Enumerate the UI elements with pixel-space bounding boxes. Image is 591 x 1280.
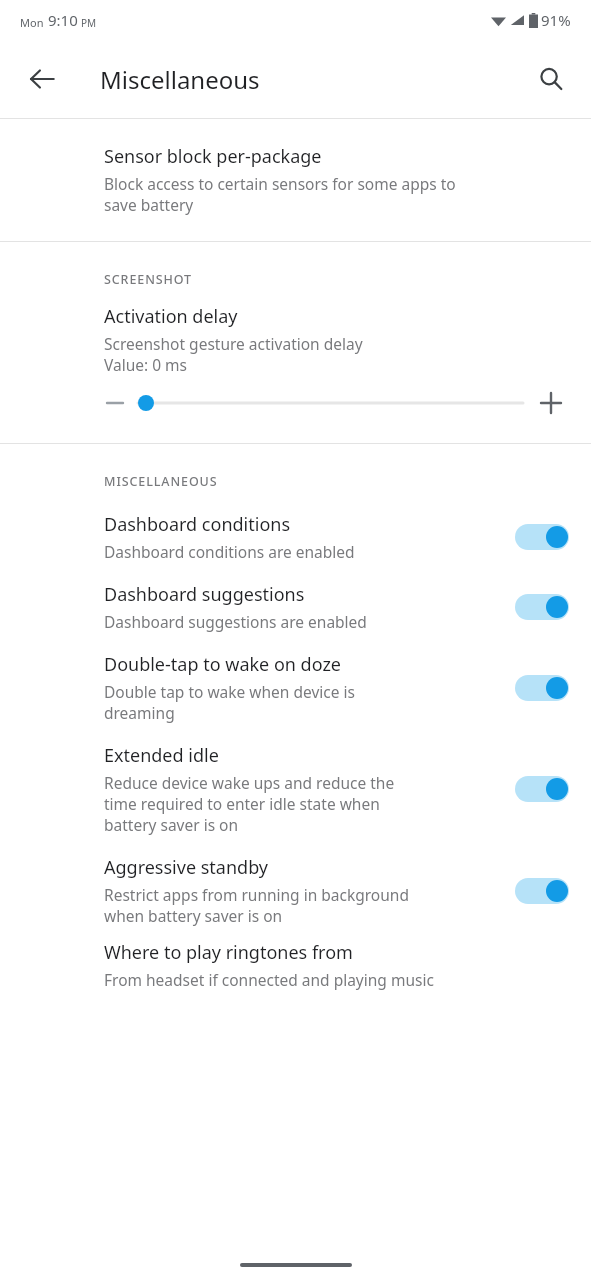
button[interactable]: Activation delay — [0, 300, 591, 381]
staticText: when battery saver is on — [104, 905, 283, 926]
button[interactable]: Extended idle — [0, 733, 591, 845]
staticText: From headset if connected and playing mu… — [104, 969, 434, 990]
button[interactable]: Dashboard conditions — [0, 502, 591, 572]
staticText: Mon — [20, 15, 44, 30]
button[interactable]: Search — [523, 51, 579, 107]
staticText: Screenshot gesture activation delay — [104, 333, 363, 354]
staticText: Block access to certain sensors for some… — [104, 173, 456, 194]
staticText: 9:10 — [48, 10, 78, 30]
button[interactable]: Toggle — [515, 673, 569, 703]
staticText: Double-tap to wake on doze — [104, 652, 342, 677]
staticText: save battery — [104, 194, 194, 215]
staticText: Aggressive standby — [104, 855, 269, 880]
button[interactable]: Increase — [535, 387, 567, 419]
button[interactable]: Activation delay slider — [138, 388, 523, 418]
staticText: Extended idle — [104, 743, 219, 768]
staticText: dreaming — [104, 702, 175, 723]
button[interactable]: Double-tap to wake on doze — [0, 642, 591, 733]
button[interactable]: Toggle — [515, 876, 569, 906]
staticText: Activation delay — [104, 304, 238, 329]
button[interactable]: Decrease — [100, 388, 130, 418]
staticText: Restrict apps from running in background — [104, 884, 409, 905]
staticText: Where to play ringtones from — [104, 940, 353, 965]
button[interactable]: Aggressive standby — [0, 845, 591, 936]
staticText: PM — [81, 16, 97, 30]
staticText: Reduce device wake ups and reduce the — [104, 772, 395, 793]
staticText: 91% — [541, 10, 571, 30]
staticText: Sensor block per-package — [104, 144, 322, 169]
staticText: Dashboard suggestions — [104, 582, 305, 607]
staticText: SCREENSHOT — [104, 271, 193, 288]
button[interactable]: Back — [14, 51, 70, 107]
staticText: Miscellaneous — [100, 63, 260, 96]
staticText: Dashboard conditions — [104, 512, 291, 537]
staticText: Double tap to wake when device is — [104, 681, 355, 702]
staticText: Value: 0 ms — [104, 354, 188, 375]
staticText: MISCELLANEOUS — [104, 473, 218, 490]
staticText: time required to enter idle state when — [104, 793, 380, 814]
button[interactable]: Dashboard suggestions — [0, 572, 591, 642]
staticText: battery saver is on — [104, 814, 239, 835]
button[interactable]: Toggle — [515, 522, 569, 552]
button[interactable]: Where to play ringtones from — [0, 936, 591, 996]
staticText: Dashboard suggestions are enabled — [104, 611, 367, 632]
button[interactable]: Sensor block per-package — [0, 140, 591, 221]
button[interactable]: Toggle — [515, 774, 569, 804]
button[interactable]: Toggle — [515, 592, 569, 622]
staticText: Dashboard conditions are enabled — [104, 541, 355, 562]
